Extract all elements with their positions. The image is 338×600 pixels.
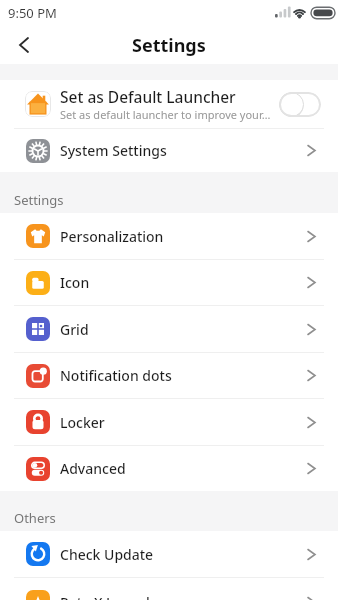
staticText: Locker xyxy=(60,413,307,432)
button[interactable]: System Settings xyxy=(0,129,338,172)
button[interactable]: Rate X Launcher xyxy=(0,579,338,600)
staticText: Check Update xyxy=(60,545,307,564)
staticText: Settings xyxy=(132,33,206,58)
staticText: Set as Default Launcher xyxy=(60,86,236,107)
button[interactable]: Advanced xyxy=(0,446,338,491)
staticText: Advanced xyxy=(60,459,307,478)
button[interactable] xyxy=(279,92,321,117)
button[interactable]: Icon xyxy=(0,260,338,305)
staticText: 9:50 PM xyxy=(8,4,57,22)
staticText: Others xyxy=(14,509,56,527)
button[interactable] xyxy=(8,29,40,61)
staticText: Rate X Launcher xyxy=(60,593,307,600)
button[interactable]: Locker xyxy=(0,399,338,445)
staticText: Grid xyxy=(60,320,307,339)
staticText: Notification dots xyxy=(60,366,307,385)
staticText: Set as default launcher to improve your… xyxy=(60,107,271,122)
staticText: System Settings xyxy=(60,141,307,160)
staticText: Icon xyxy=(60,273,307,292)
button[interactable]: Set as Default Launcher xyxy=(0,80,338,128)
staticText: Settings xyxy=(14,191,64,209)
button[interactable]: Personalization xyxy=(0,213,338,259)
staticText: Personalization xyxy=(60,227,307,246)
button[interactable]: Notification dots xyxy=(0,353,338,398)
button[interactable]: Grid xyxy=(0,306,338,352)
button[interactable]: Check Update xyxy=(0,531,338,577)
